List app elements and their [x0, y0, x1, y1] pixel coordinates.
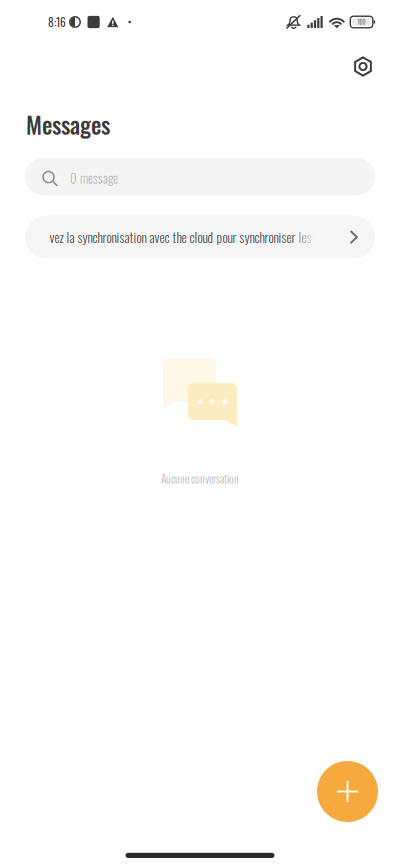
button[interactable]: Settings [344, 48, 381, 85]
button[interactable]: 0 message [25, 158, 375, 196]
staticText: 0 message [70, 169, 118, 187]
button[interactable]: vez la synchronisation avec the cloud po… [25, 216, 375, 259]
staticText: 8:16 [48, 14, 66, 30]
button[interactable]: New message [317, 761, 378, 822]
staticText: 100 [358, 18, 366, 26]
staticText: Aucune conversation [161, 470, 239, 487]
staticText: vez la synchronisation avec the cloud po… [49, 227, 349, 247]
staticText: Messages [26, 107, 110, 142]
